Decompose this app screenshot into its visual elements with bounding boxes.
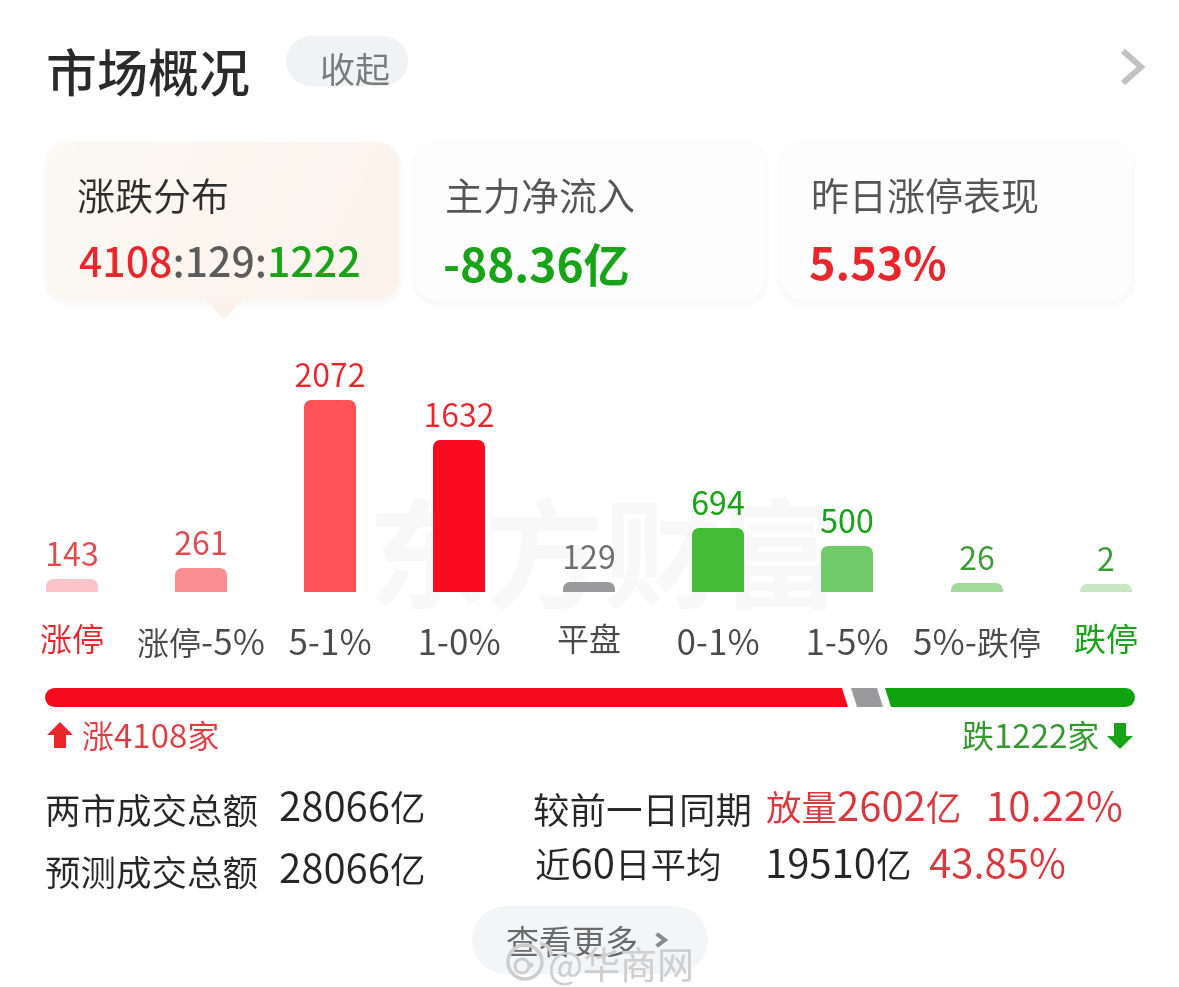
staticText: 43.85% bbox=[929, 832, 1066, 890]
staticText: 10.22% bbox=[986, 775, 1123, 833]
staticText: 1632 bbox=[389, 390, 529, 436]
button[interactable]: More bbox=[1098, 30, 1168, 100]
staticText: 涨停 bbox=[0, 614, 152, 660]
staticText: 26 bbox=[907, 533, 1047, 579]
staticText: 查看更多 bbox=[506, 916, 638, 964]
button[interactable]: 涨4108家 bbox=[44, 708, 229, 756]
staticText: 1-0% bbox=[379, 614, 539, 665]
button[interactable]: 5-1% 2072 bbox=[266, 345, 394, 655]
button[interactable]: 1-5% 500 bbox=[783, 345, 911, 655]
staticText: 500 bbox=[777, 496, 917, 542]
staticText: 143 bbox=[2, 529, 142, 575]
staticText: 较前一日同期 bbox=[533, 782, 752, 835]
button[interactable]: 收起 bbox=[286, 36, 408, 86]
staticText: 2 bbox=[1036, 534, 1176, 580]
staticText: -88.36亿 bbox=[443, 229, 630, 296]
button[interactable]: Advance decline ratio bbox=[45, 688, 1135, 707]
staticText: 跌1222家 bbox=[962, 710, 1100, 758]
staticText: 2072 bbox=[260, 350, 400, 396]
staticText: 5.53% bbox=[809, 228, 947, 293]
staticText: 261 bbox=[131, 518, 271, 564]
staticText: 5%-跌停 bbox=[897, 614, 1057, 665]
button[interactable]: 主力净流入 bbox=[415, 142, 765, 300]
staticText: 涨4108家 bbox=[82, 710, 220, 758]
button[interactable]: 1-0% 1632 bbox=[395, 345, 523, 655]
staticText: 129 bbox=[519, 532, 659, 578]
button[interactable]: 5%-跌停 26 bbox=[913, 345, 1041, 655]
staticText: 主力净流入 bbox=[445, 166, 636, 221]
staticText: 0-1% bbox=[638, 614, 798, 665]
staticText: 5-1% bbox=[250, 614, 410, 665]
staticText: 涨停-5% bbox=[121, 614, 281, 665]
button[interactable]: 涨跌分布 bbox=[47, 142, 399, 300]
staticText: 694 bbox=[648, 478, 788, 524]
staticText: 两市成交总额 bbox=[45, 783, 259, 834]
button[interactable]: 涨停 143 bbox=[8, 345, 136, 655]
staticText: 跌停 bbox=[1026, 614, 1179, 660]
staticText: 近60日平均 bbox=[535, 832, 722, 890]
staticText: 涨跌分布 bbox=[77, 166, 230, 221]
staticText: 4108:129:1222 bbox=[79, 229, 361, 288]
button[interactable]: 涨停-5% 261 bbox=[137, 345, 265, 655]
button[interactable]: 查看更多 bbox=[472, 906, 708, 974]
button[interactable]: 平盘 129 bbox=[525, 345, 653, 655]
staticText: 1-5% bbox=[767, 614, 927, 665]
staticText: 28066亿 bbox=[279, 837, 426, 895]
staticText: 东方财富 bbox=[368, 462, 841, 633]
staticText: 19510亿 bbox=[765, 832, 912, 890]
staticText: 收起 bbox=[320, 42, 391, 86]
staticText: @华商网 bbox=[548, 936, 695, 987]
button[interactable]: 跌1222家 bbox=[958, 708, 1138, 756]
staticText: 昨日涨停表现 bbox=[811, 166, 1040, 221]
button[interactable]: 昨日涨停表现 bbox=[781, 142, 1132, 300]
button[interactable]: 0-1% 694 bbox=[654, 345, 782, 655]
staticText: 预测成交总额 bbox=[45, 845, 259, 896]
staticText: 市场概况 bbox=[46, 33, 251, 107]
button[interactable]: 跌停 2 bbox=[1042, 345, 1170, 655]
staticText: 放量2602亿 bbox=[766, 775, 962, 833]
staticText: 28066亿 bbox=[279, 775, 426, 833]
staticText: 平盘 bbox=[509, 614, 669, 660]
